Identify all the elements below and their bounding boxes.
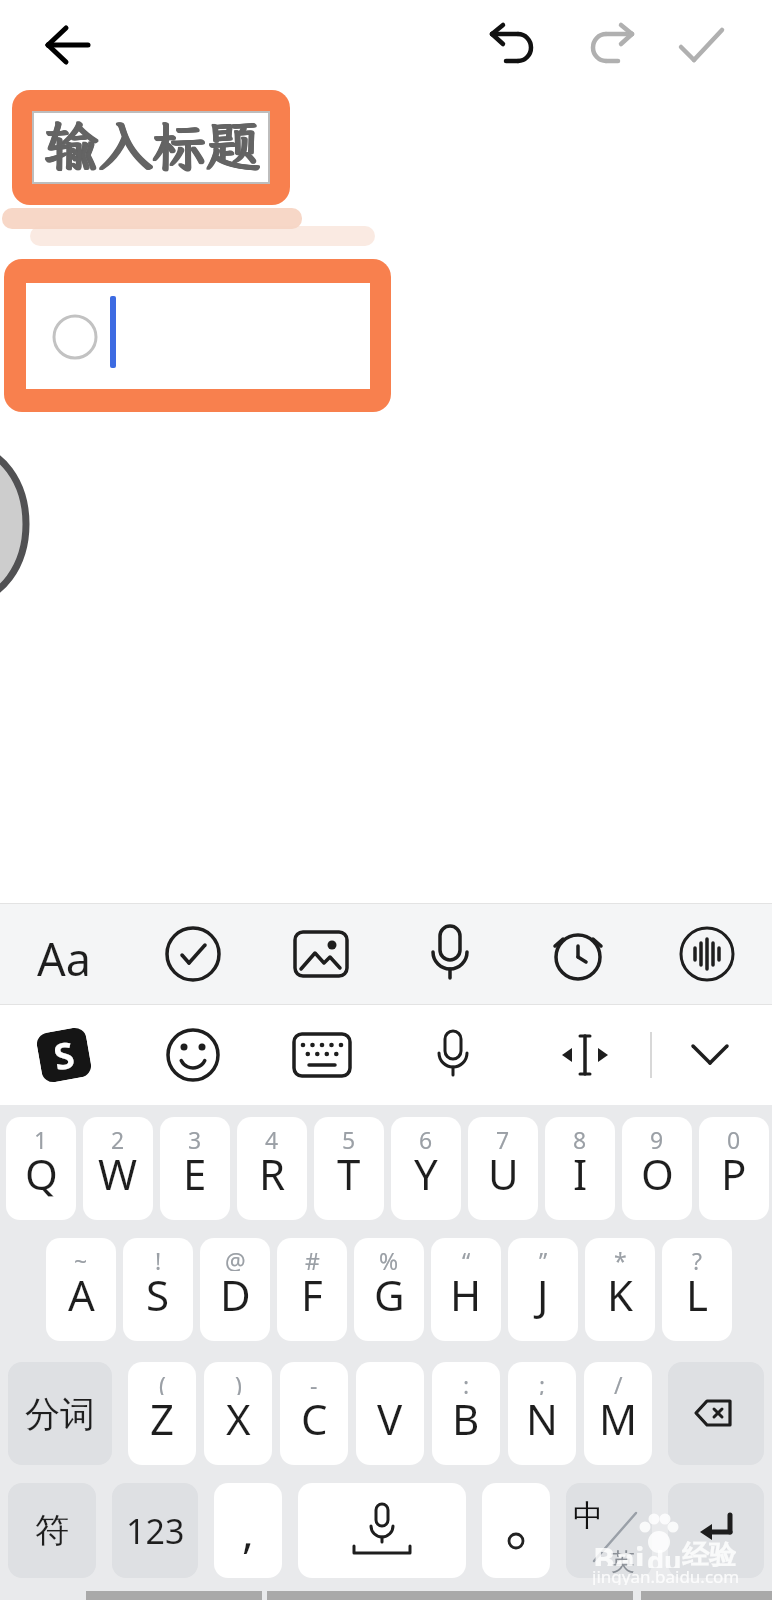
staticText: Bai <box>593 1536 645 1566</box>
button[interactable]: 3 <box>160 1117 230 1220</box>
staticText: ! <box>155 1245 162 1271</box>
staticText: 7 <box>496 1124 510 1150</box>
button[interactable] <box>586 26 634 66</box>
button[interactable] <box>44 24 92 66</box>
staticText: 输入标题 <box>43 110 259 181</box>
button[interactable] <box>291 924 351 984</box>
staticText: 分词 <box>25 1392 95 1436</box>
button[interactable] <box>668 1483 764 1578</box>
button[interactable]: , <box>214 1483 282 1578</box>
staticText: 符 <box>35 1509 69 1552</box>
staticText: T <box>337 1145 361 1202</box>
staticText: I <box>573 1145 588 1202</box>
staticText: Y <box>414 1145 438 1202</box>
staticText: : <box>463 1369 470 1395</box>
staticText: C <box>301 1390 328 1447</box>
staticText: P <box>721 1145 747 1202</box>
staticText: # <box>305 1245 320 1271</box>
button[interactable] <box>420 920 480 984</box>
button[interactable]: # <box>277 1238 347 1341</box>
staticText: Q <box>25 1145 58 1202</box>
button[interactable]: 1 <box>6 1117 76 1220</box>
button[interactable]: Aa <box>34 928 94 980</box>
staticText: 输入标题 <box>45 109 261 180</box>
staticText: 输入标题 <box>43 109 259 180</box>
staticText: % <box>379 1245 399 1271</box>
button[interactable] <box>490 26 538 66</box>
button[interactable]: - <box>280 1362 348 1465</box>
button[interactable] <box>290 1027 354 1083</box>
staticText: 中 <box>573 1497 603 1531</box>
button[interactable]: ? <box>662 1238 732 1341</box>
button[interactable] <box>298 1483 466 1578</box>
button[interactable]: ! <box>123 1238 193 1341</box>
staticText: / <box>614 1369 623 1395</box>
staticText: 0 <box>727 1124 741 1150</box>
button[interactable] <box>163 924 223 984</box>
button[interactable] <box>555 1031 615 1079</box>
staticText: G <box>374 1266 405 1323</box>
staticText: 4 <box>265 1124 279 1150</box>
staticText: E <box>183 1145 207 1202</box>
staticText: O <box>641 1145 674 1202</box>
button[interactable] <box>682 1034 738 1074</box>
button[interactable]: _ <box>356 1362 424 1465</box>
button[interactable]: 0 <box>699 1117 769 1220</box>
button[interactable] <box>668 1362 764 1465</box>
staticText: * <box>614 1245 627 1271</box>
button[interactable]: 7 <box>468 1117 538 1220</box>
staticText: Aa <box>37 928 92 980</box>
button[interactable]: 2 <box>83 1117 153 1220</box>
button[interactable] <box>676 923 738 985</box>
button[interactable]: 4 <box>237 1117 307 1220</box>
button[interactable]: ~ <box>46 1238 116 1341</box>
button[interactable]: 123 <box>112 1483 198 1578</box>
button[interactable]: / <box>584 1362 652 1465</box>
button[interactable] <box>482 1483 550 1578</box>
staticText: ( <box>159 1369 166 1395</box>
staticText: jingyan.baidu.com <box>592 1565 740 1585</box>
button[interactable]: % <box>354 1238 424 1341</box>
staticText: D <box>220 1266 251 1323</box>
button[interactable]: 中 <box>566 1483 652 1578</box>
button[interactable]: 符 <box>8 1483 96 1578</box>
staticText: L <box>686 1266 709 1323</box>
staticText: 经验 <box>682 1538 736 1568</box>
button[interactable]: 5 <box>314 1117 384 1220</box>
button[interactable] <box>428 1024 478 1082</box>
button[interactable]: ( <box>128 1362 196 1465</box>
staticText: U <box>488 1145 519 1202</box>
button[interactable] <box>32 111 270 184</box>
staticText: @ <box>225 1245 246 1271</box>
staticText: N <box>526 1390 558 1447</box>
button[interactable]: * <box>585 1238 655 1341</box>
button[interactable]: ” <box>508 1238 578 1341</box>
button[interactable]: ; <box>508 1362 576 1465</box>
staticText: 输入标题 <box>44 110 260 181</box>
button[interactable]: : <box>432 1362 500 1465</box>
button[interactable]: 6 <box>391 1117 461 1220</box>
button[interactable] <box>26 283 370 389</box>
staticText: W <box>98 1145 138 1202</box>
staticText: 英 <box>611 1547 635 1577</box>
button[interactable]: ) <box>204 1362 272 1465</box>
staticText: K <box>607 1266 633 1323</box>
button[interactable]: 分词 <box>8 1362 112 1465</box>
staticText: du <box>647 1542 682 1568</box>
staticText: R <box>259 1145 286 1202</box>
button[interactable]: @ <box>200 1238 270 1341</box>
staticText: F <box>301 1266 323 1323</box>
button[interactable] <box>163 1025 223 1085</box>
staticText: J <box>537 1266 549 1323</box>
staticText: X <box>226 1390 251 1447</box>
button[interactable] <box>546 922 610 986</box>
staticText: 9 <box>650 1124 664 1150</box>
staticText: 输入标题 <box>45 110 261 181</box>
button[interactable]: 9 <box>622 1117 692 1220</box>
button[interactable]: S <box>35 1026 93 1084</box>
button[interactable]: 8 <box>545 1117 615 1220</box>
staticText: ; <box>539 1369 546 1395</box>
button[interactable]: “ <box>431 1238 501 1341</box>
staticText: “ <box>462 1245 471 1271</box>
button[interactable] <box>677 25 725 65</box>
